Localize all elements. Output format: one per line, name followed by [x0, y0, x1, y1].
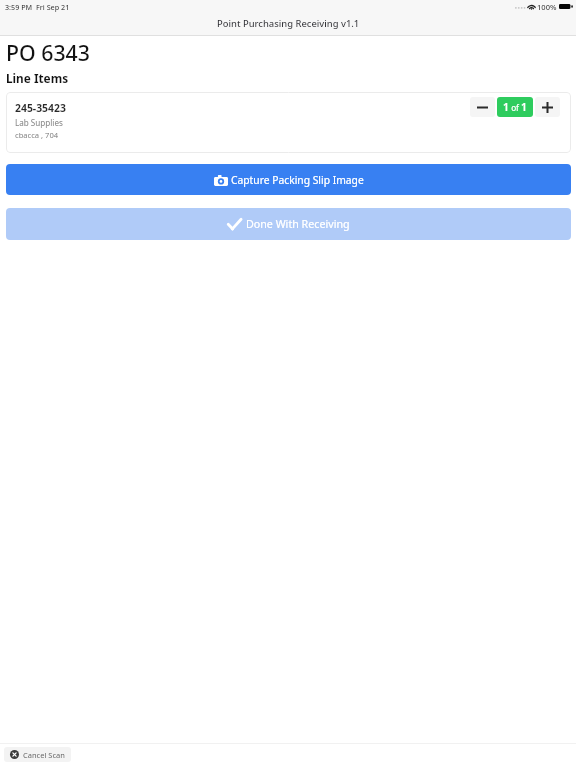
button[interactable]: Cancel Scan [4, 747, 71, 762]
staticText: Line Items [6, 70, 69, 86]
button[interactable]: Capture Packing Slip Image [6, 164, 571, 195]
staticText: Lab Supplies [15, 117, 63, 128]
staticText: Point Purchasing Receiving v1.1 [217, 17, 360, 30]
staticText: PO 6343 [6, 38, 90, 67]
staticText: 3:59 PM [5, 2, 33, 12]
button[interactable]: Done With Receiving [6, 208, 571, 240]
staticText: 1 of 1 [503, 100, 528, 114]
staticText: Cancel Scan [23, 750, 65, 760]
staticText: Fri Sep 21 [36, 2, 70, 12]
staticText: cbacca , 704 [15, 130, 59, 140]
staticText: Done With Receiving [246, 217, 350, 232]
button[interactable]: 245-35423 [6, 92, 571, 153]
staticText: 245-35423 [15, 101, 66, 115]
button[interactable]: Decrease quantity [470, 97, 495, 117]
staticText: 100% [537, 2, 557, 12]
button[interactable]: 1 of 1 [497, 97, 533, 117]
button[interactable]: Increase quantity [535, 97, 560, 117]
staticText: Capture Packing Slip Image [231, 173, 364, 187]
